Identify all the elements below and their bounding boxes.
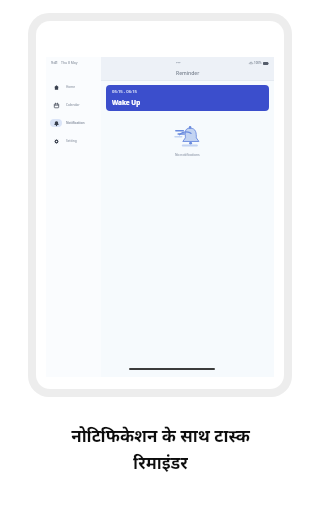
staticText: No notifications bbox=[175, 152, 200, 156]
staticText: 9:41 bbox=[51, 60, 58, 65]
button[interactable]: 05:15 - 06:15 bbox=[106, 85, 269, 111]
staticText: Calendar bbox=[66, 103, 80, 107]
staticText: Reminder bbox=[176, 70, 200, 77]
other: Setting bbox=[54, 139, 59, 144]
button[interactable]: Calendar bbox=[46, 99, 101, 110]
button[interactable]: Notification bbox=[46, 117, 101, 128]
button[interactable]: Home bbox=[46, 81, 101, 92]
staticText: 100% bbox=[254, 61, 262, 65]
other: Notification bbox=[54, 121, 59, 126]
staticText: Home bbox=[66, 85, 76, 89]
staticText: Setting bbox=[66, 139, 77, 143]
staticText: नोटिफिकेशन के साथ टास्क bbox=[71, 424, 250, 447]
other: Home bbox=[54, 85, 59, 90]
button[interactable]: Setting bbox=[46, 135, 101, 146]
staticText: 05:15 - 06:15 bbox=[112, 89, 137, 95]
staticText: Wake Up bbox=[112, 98, 141, 107]
other: Calendar bbox=[54, 103, 59, 108]
staticText: Notification bbox=[66, 121, 85, 125]
staticText: रिमाइंडर bbox=[133, 451, 188, 474]
staticText: ••• bbox=[176, 60, 181, 65]
staticText: Thu 8 May bbox=[61, 60, 78, 65]
